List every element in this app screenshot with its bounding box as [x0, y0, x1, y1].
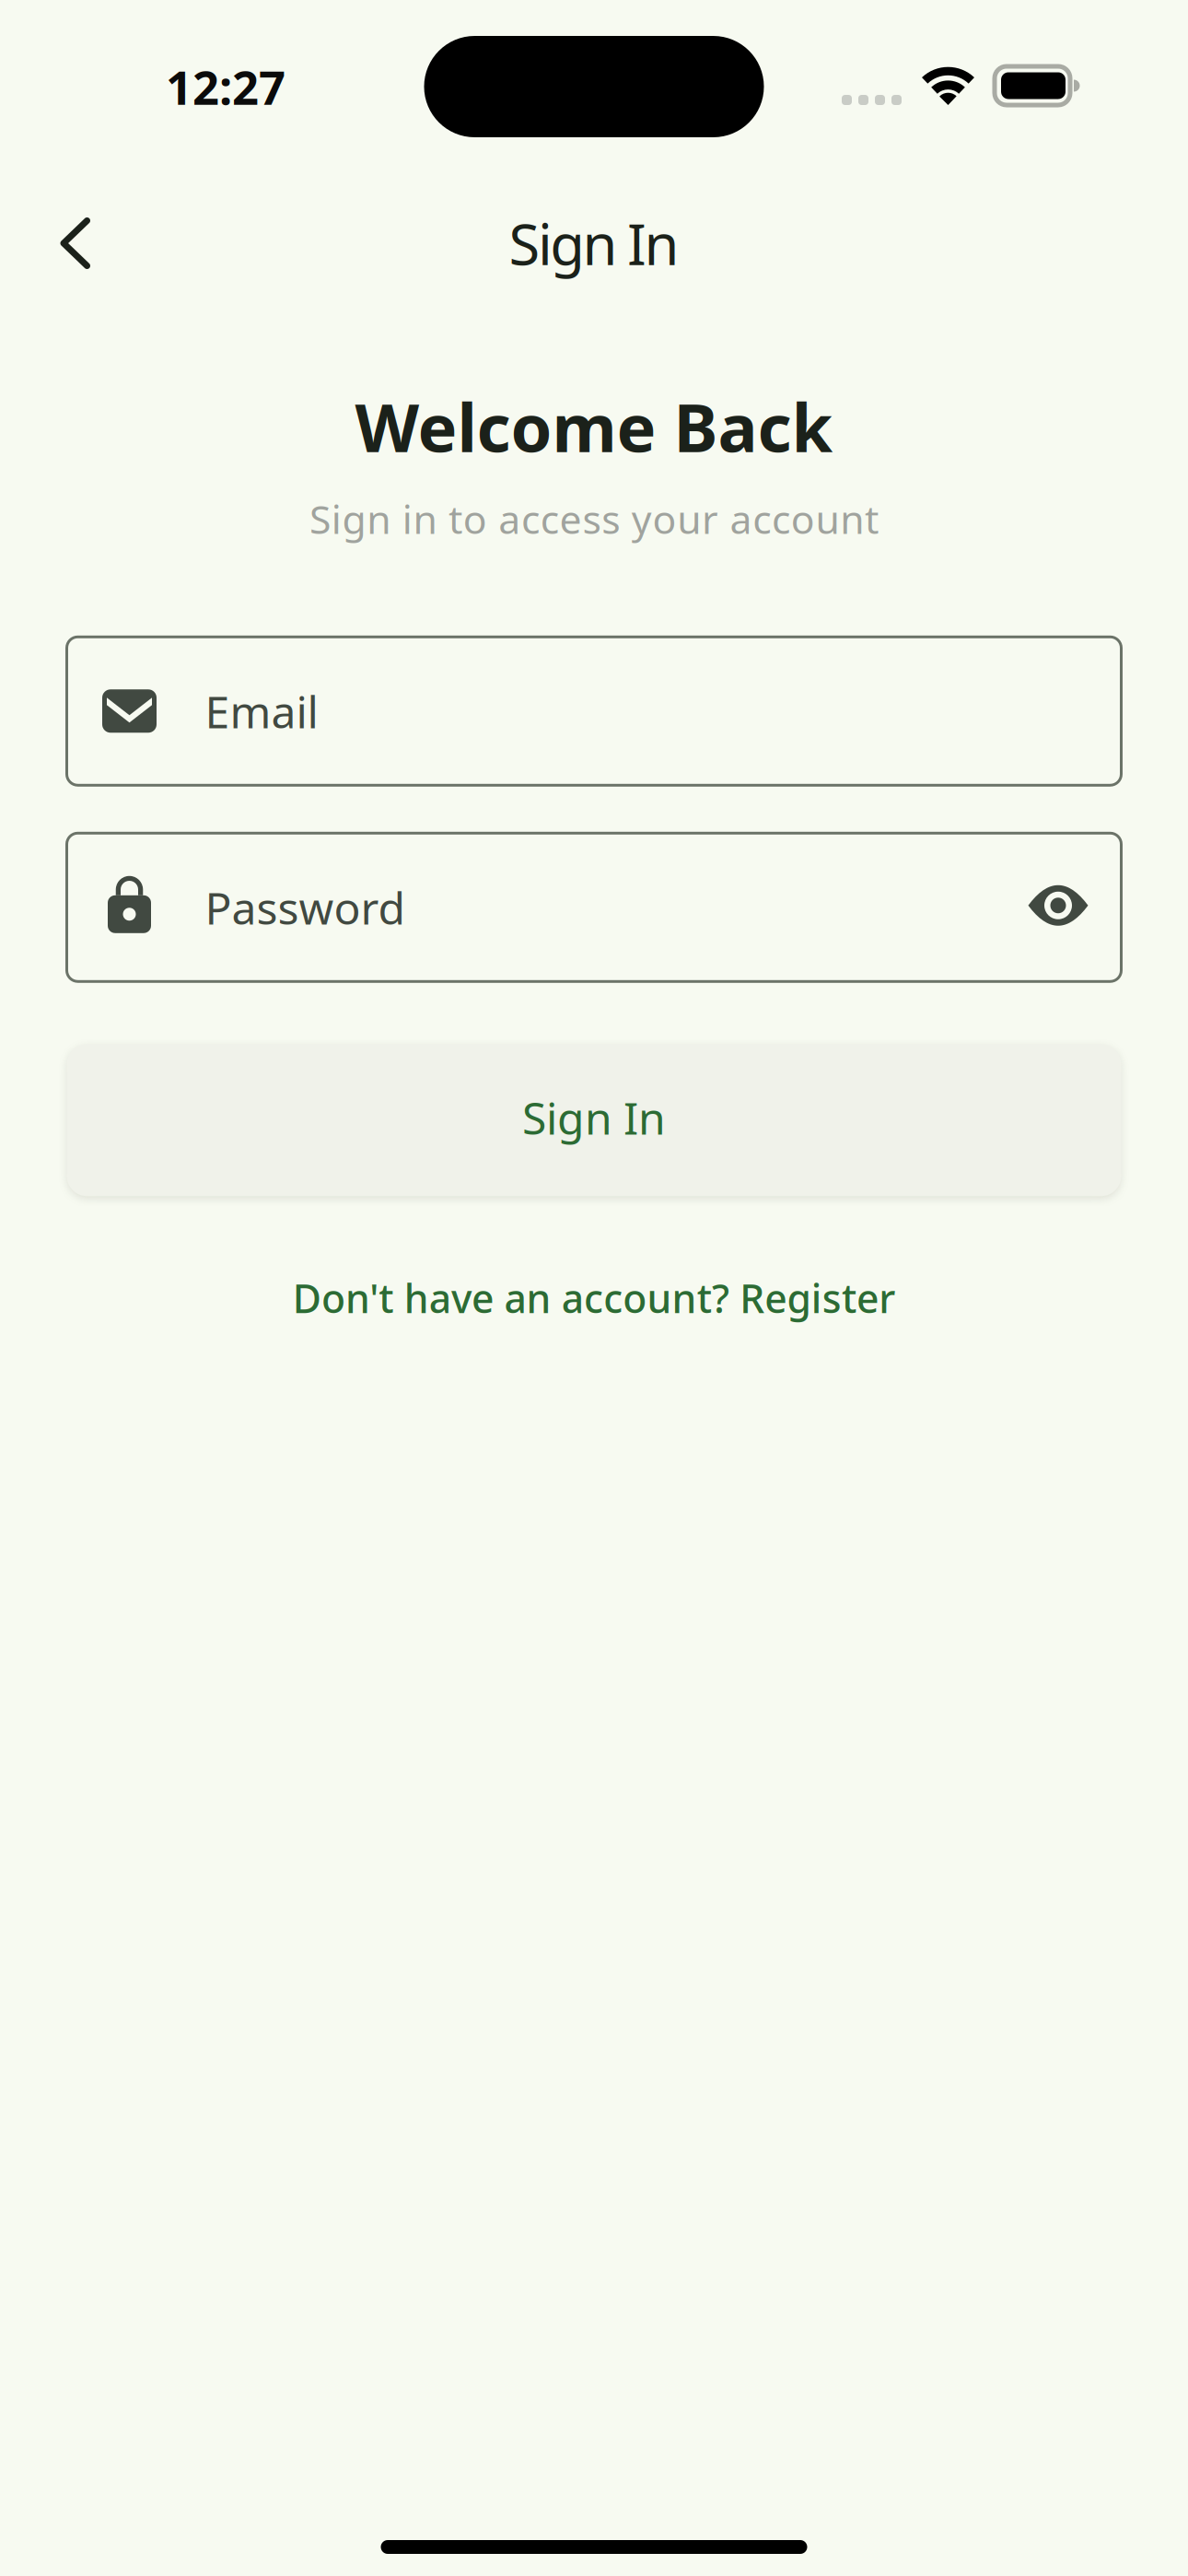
staticText: Welcome Back — [355, 382, 833, 470]
button[interactable]: Password — [67, 833, 1121, 981]
staticText: Sign In — [509, 206, 679, 281]
button[interactable]: Email — [67, 637, 1121, 785]
staticText: 12:27 — [166, 56, 285, 118]
button[interactable]: Don't have an account? Register — [293, 1272, 895, 1324]
staticText: Email — [205, 682, 318, 740]
staticText: Don't have an account? Register — [293, 1272, 895, 1324]
staticText: Password — [205, 878, 406, 937]
button[interactable]: Back — [0, 193, 131, 294]
staticText: Sign In — [522, 1088, 666, 1147]
button[interactable]: Sign In — [67, 1044, 1121, 1196]
button[interactable]: Show password — [1028, 885, 1088, 929]
staticText: Sign in to access your account — [309, 493, 879, 545]
